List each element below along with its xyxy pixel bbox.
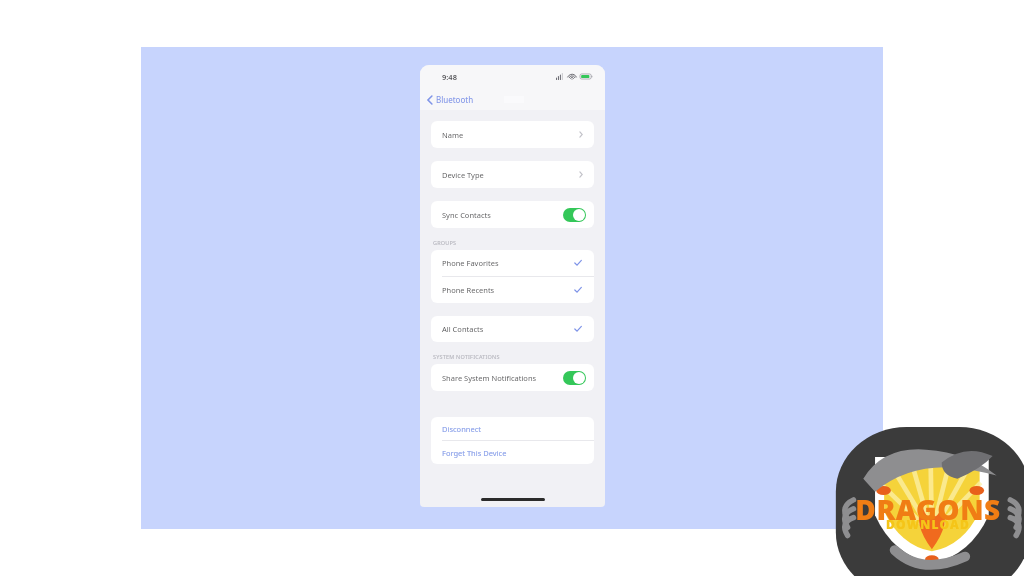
button[interactable]: Bluetooth [425, 92, 476, 107]
button[interactable]: Sync Contacts [431, 201, 594, 228]
button[interactable]: Phone Favorites [431, 250, 594, 276]
other: Sync Contacts toggle, on [563, 208, 586, 222]
staticText: 9:48 [442, 72, 457, 82]
button[interactable]: All Contacts [431, 316, 594, 342]
button[interactable]: Phone Recents [431, 277, 594, 303]
staticText: Phone Recents [442, 285, 495, 295]
staticText: Name [442, 130, 464, 140]
button[interactable]: Disconnect [431, 417, 594, 440]
staticText: Phone Favorites [442, 258, 499, 268]
staticText: Disconnect [442, 424, 481, 434]
staticText: Share System Notifications [442, 373, 537, 383]
staticText: Sync Contacts [442, 210, 491, 220]
button[interactable]: Forget This Device [431, 441, 594, 464]
staticText: Device Type [442, 170, 484, 180]
staticText: Forget This Device [442, 448, 507, 458]
other: Dragons Download watermark [828, 414, 1024, 576]
button[interactable]: Device Type [431, 161, 594, 188]
button[interactable]: Share System Notifications [431, 364, 594, 391]
other: Share System Notifications toggle, on [563, 371, 586, 385]
staticText: DOWNLOAD [830, 516, 1024, 532]
staticText: Bluetooth [436, 94, 474, 105]
staticText: GROUPS [433, 239, 457, 246]
staticText: SYSTEM NOTIFICATIONS [433, 353, 500, 360]
staticText: All Contacts [442, 324, 484, 334]
button[interactable]: Name [431, 121, 594, 148]
staticText: DRAGONS [830, 490, 1024, 528]
